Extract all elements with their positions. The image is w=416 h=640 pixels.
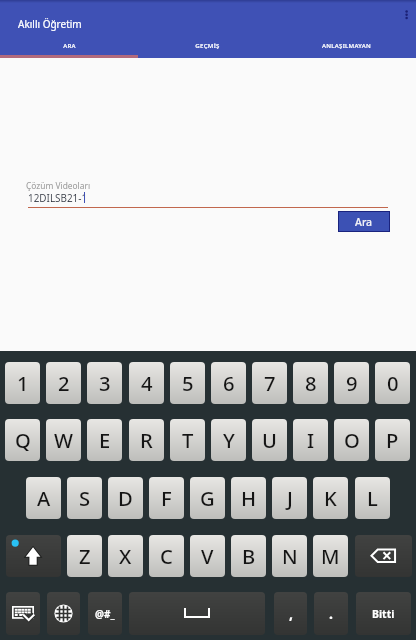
button[interactable]: Change language [47,592,80,635]
button[interactable]: Q [5,419,40,461]
button[interactable]: T [170,419,205,461]
button[interactable]: 3 [87,362,122,404]
button[interactable]: 6 [211,362,246,404]
staticText: I [307,426,315,454]
staticText: R [140,426,153,454]
button[interactable]: K [313,477,348,519]
button[interactable]: I [293,419,328,461]
button[interactable]: Ara [339,212,389,231]
button[interactable]: 1 [5,362,40,404]
button[interactable]: Backspace [355,535,412,577]
staticText: L [367,484,378,512]
staticText: 7 [264,369,276,397]
button[interactable]: 7 [252,362,287,404]
staticText: ARA [63,41,76,49]
button[interactable]: 0 [375,362,410,404]
staticText: Ara [355,215,373,229]
staticText: H [241,484,257,512]
button[interactable]: H [231,477,266,519]
button[interactable]: L [355,477,390,519]
staticText: K [324,484,337,512]
staticText: 2 [58,369,70,397]
button[interactable]: Hide keyboard [6,592,40,635]
button[interactable]: 9 [334,362,369,404]
button[interactable]: 4 [129,362,164,404]
staticText: X [119,542,132,570]
staticText: D [118,484,133,512]
staticText: 4 [141,369,153,397]
staticText: 9 [346,369,358,397]
button[interactable]: W [46,419,81,461]
button[interactable]: Space [129,592,265,635]
staticText: 8 [305,369,317,397]
staticText: Akıllı Öğretim [18,17,82,31]
button[interactable]: C [149,535,184,577]
staticText: P [386,426,399,454]
staticText: M [321,542,340,570]
staticText: T [182,426,194,454]
staticText: S [79,484,91,512]
staticText: 12DILSB21-1 [28,191,88,204]
button[interactable]: D [108,477,143,519]
staticText: Q [15,426,31,454]
staticText: A [37,484,51,512]
button[interactable]: Bitti [356,592,411,635]
button[interactable]: ANLAŞILMAYAN [277,36,416,59]
button[interactable]: , [274,592,307,635]
button[interactable]: X [108,535,143,577]
staticText: @#_ [95,607,115,621]
staticText: G [200,484,215,512]
button[interactable]: Z [67,535,102,577]
staticText: F [161,484,172,512]
staticText: Y [223,426,235,454]
staticText: O [344,426,360,454]
button[interactable]: U [252,419,287,461]
button[interactable]: GEÇMİŞ [138,36,277,59]
button[interactable]: B [231,535,266,577]
button[interactable]: 2 [46,362,81,404]
button[interactable]: P [375,419,410,461]
staticText: , [289,604,293,623]
staticText: GEÇMİŞ [195,41,220,49]
staticText: 0 [387,369,399,397]
staticText: E [99,426,111,454]
button[interactable]: 8 [293,362,328,404]
staticText: N [282,542,298,570]
staticText: ANLAŞILMAYAN [322,41,371,49]
button[interactable]: F [149,477,184,519]
staticText: . [329,604,333,623]
button[interactable]: R [129,419,164,461]
staticText: Çözüm Videoları [26,180,91,191]
staticText: W [54,426,73,454]
button[interactable]: G [190,477,225,519]
staticText: C [160,542,173,570]
button[interactable]: N [272,535,307,577]
staticText: U [262,426,277,454]
staticText: Z [79,542,91,570]
button[interactable]: V [190,535,225,577]
button[interactable]: A [26,477,61,519]
button[interactable]: ARA [0,36,138,59]
staticText: Bitti [372,607,395,621]
button[interactable]: Shift [6,535,61,577]
staticText: V [201,542,214,570]
button[interactable]: J [272,477,307,519]
button[interactable]: @#_ [88,592,122,635]
staticText: 3 [99,369,111,397]
button[interactable]: M [313,535,348,577]
button[interactable]: Y [211,419,246,461]
staticText: B [242,542,256,570]
staticText: 5 [182,369,194,397]
button[interactable]: E [87,419,122,461]
button[interactable]: O [334,419,369,461]
staticText: J [287,484,293,512]
button[interactable]: 5 [170,362,205,404]
button[interactable]: More options [398,6,416,24]
button[interactable]: S [67,477,102,519]
button[interactable]: . [314,592,348,635]
staticText: 6 [223,369,235,397]
staticText: 1 [17,369,29,397]
